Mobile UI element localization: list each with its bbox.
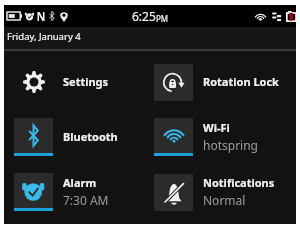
staticText: Wi-Fi xyxy=(203,120,230,135)
staticText: PM xyxy=(156,13,169,24)
staticText: Bluetooth xyxy=(63,129,118,144)
button[interactable]: Rotation Lock xyxy=(149,54,290,109)
staticText: Alarm xyxy=(63,175,97,190)
button[interactable]: Wi-Fi xyxy=(149,109,290,164)
button[interactable]: Bluetooth xyxy=(9,109,149,164)
button[interactable]: Settings xyxy=(9,54,149,109)
button[interactable]: Alarm xyxy=(9,164,149,219)
button[interactable]: Notifications xyxy=(149,164,290,219)
staticText: Normal xyxy=(203,192,246,208)
staticText: 6:25 xyxy=(132,8,156,24)
staticText: Friday, January 4 xyxy=(7,30,81,43)
staticText: hotspring xyxy=(203,137,258,153)
staticText: Settings xyxy=(63,74,109,89)
staticText: 7:30 AM xyxy=(63,192,109,208)
staticText: Notifications xyxy=(203,175,275,190)
staticText: Rotation Lock xyxy=(203,74,279,89)
